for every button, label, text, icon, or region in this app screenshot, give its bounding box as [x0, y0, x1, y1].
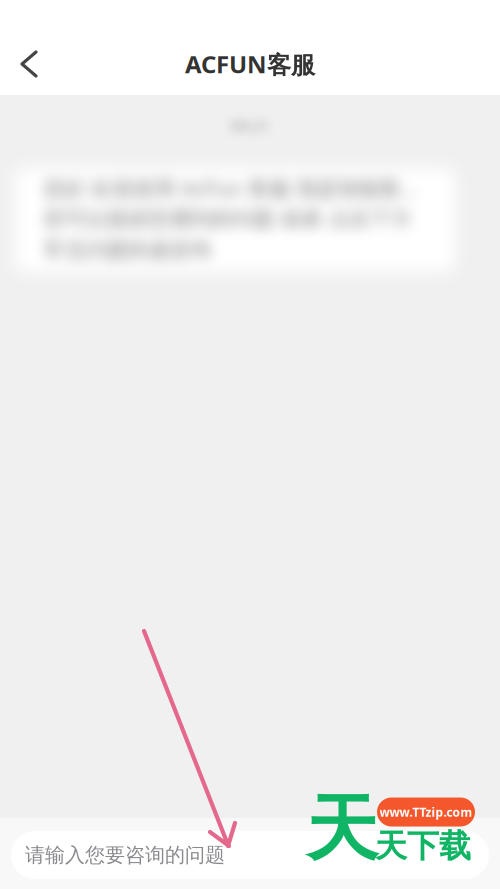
staticText: 天	[306, 785, 378, 873]
staticText: ACFUN客服	[185, 48, 315, 80]
staticText: www.TTzip.com	[379, 804, 472, 820]
button[interactable]: 请输入您要咨询的问题	[0, 818, 500, 889]
staticText: 请输入您要咨询的问题	[25, 843, 225, 867]
staticText: 天下载	[375, 826, 471, 866]
button[interactable]: Back	[0, 38, 56, 90]
